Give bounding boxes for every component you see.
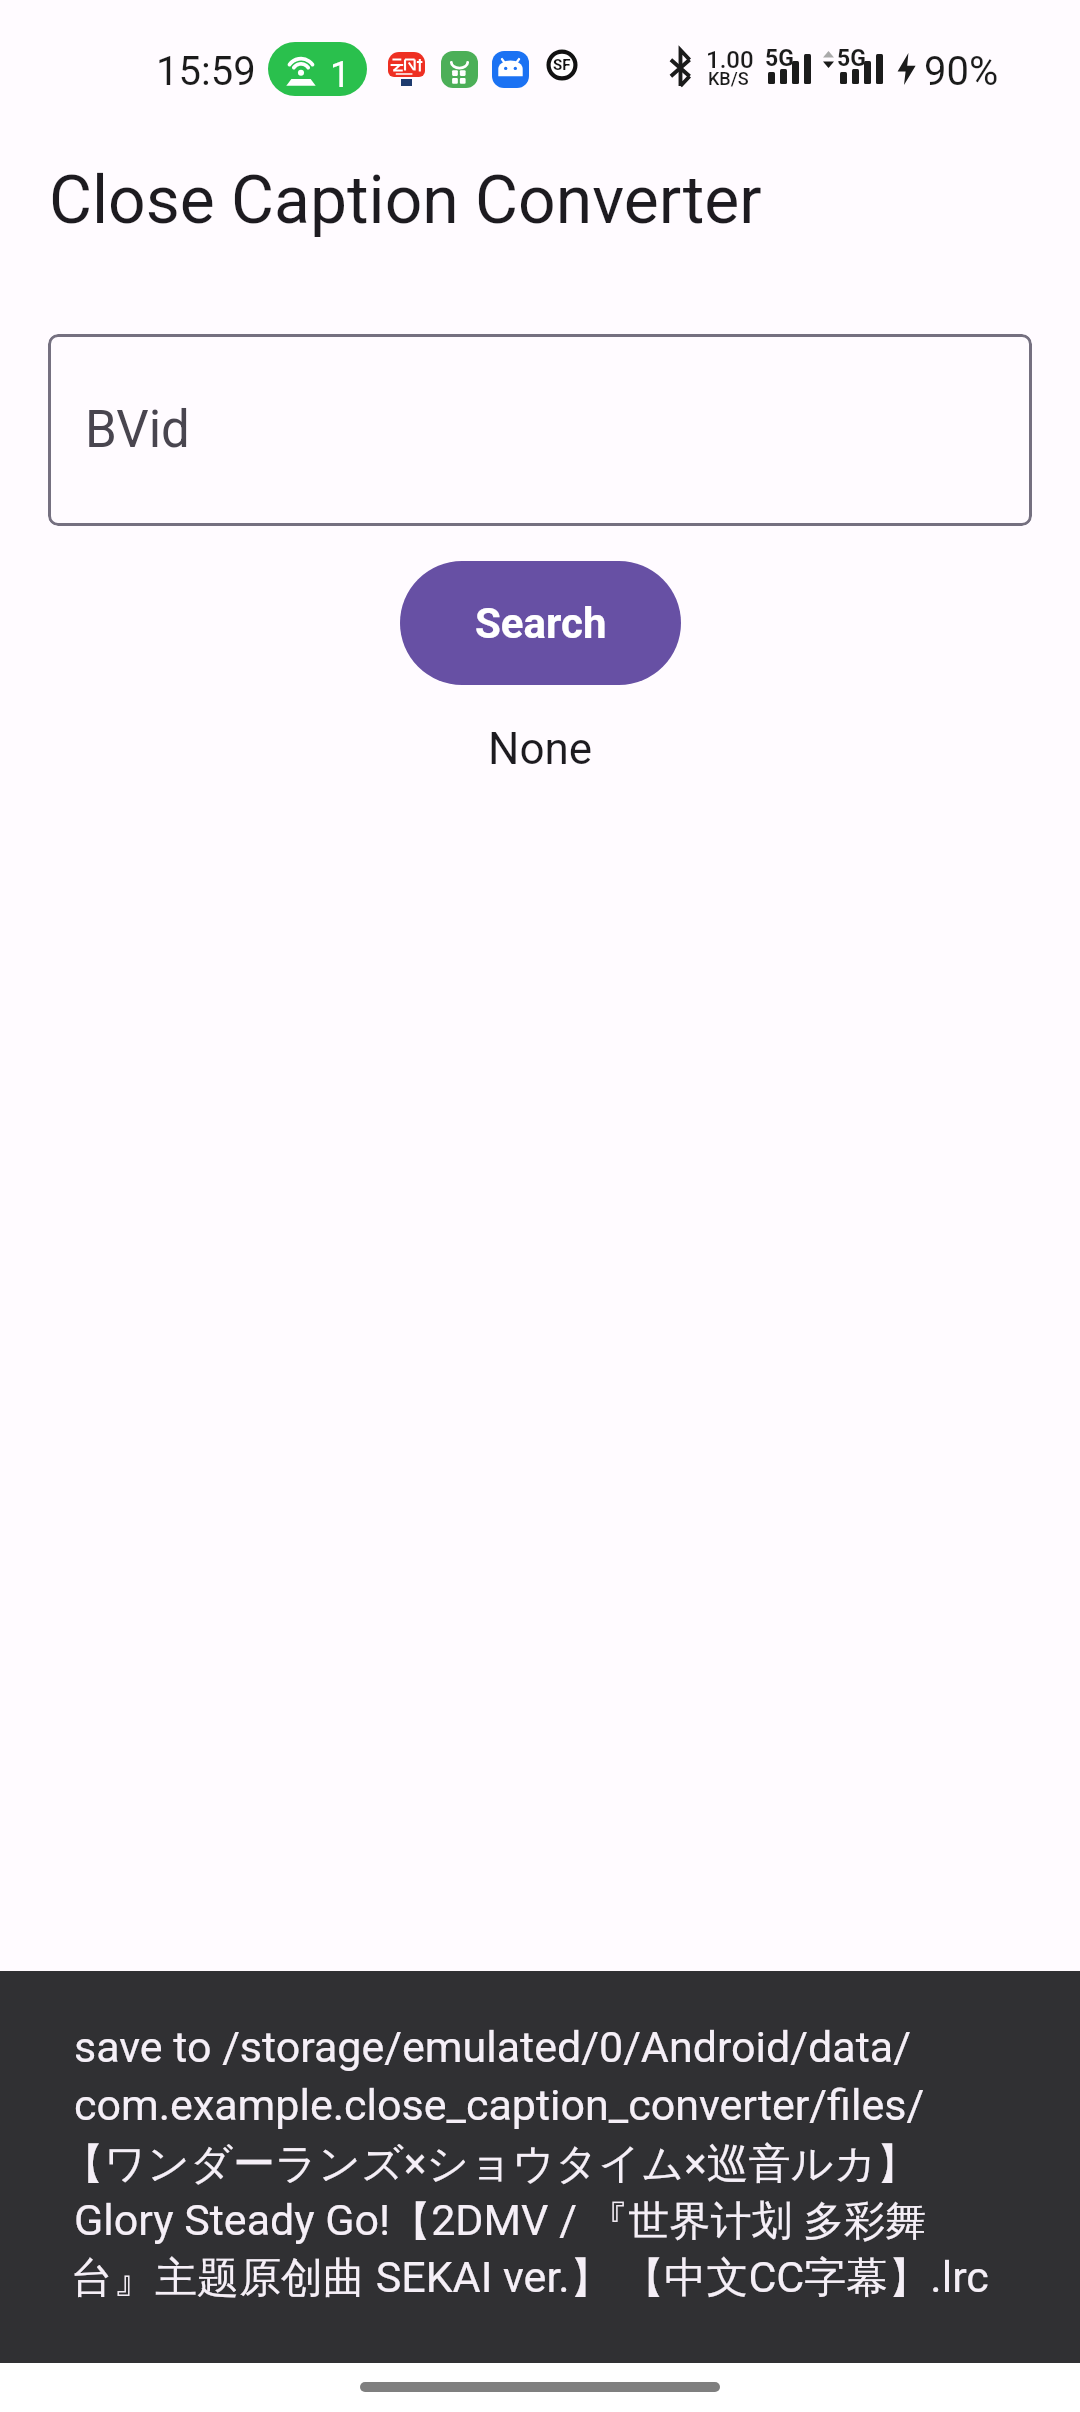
staticText: BVid (85, 400, 190, 460)
staticText: 90% (924, 48, 999, 95)
staticText: 15:59 (156, 48, 256, 95)
button[interactable]: Search (400, 561, 681, 685)
staticText: KB/S (708, 68, 749, 89)
staticText: Close Caption Converter (49, 162, 762, 239)
button[interactable]: Pinduoduo notification (441, 51, 478, 88)
staticText: 5G (765, 45, 794, 72)
button[interactable]: Android system notification (492, 51, 529, 88)
staticText: Glory Steady Go!【2DMV / 『世界计划 多彩舞 (74, 2195, 927, 2247)
staticText: SF (553, 56, 571, 74)
staticText: 5G (837, 45, 866, 72)
staticText: None (488, 723, 593, 775)
staticText: 【ワンダーランズ×ショウタイム×巡音ルカ】 (62, 2138, 919, 2191)
staticText: 1 (330, 54, 351, 96)
staticText: 台』主题原创曲 SEKAI ver.】 【中文CC字幕】.lrc (71, 2252, 989, 2305)
button[interactable]: BVid input field (48, 334, 1032, 526)
staticText: com.example.close_caption_converter/file… (74, 2080, 925, 2130)
staticText: 1.00 (706, 46, 754, 74)
button[interactable]: Hotspot, 1 device connected (268, 42, 367, 96)
button[interactable]: SF Express notification (546, 49, 578, 81)
staticText: save to /storage/emulated/0/Android/data… (74, 2022, 911, 2072)
staticText: Search (475, 599, 607, 648)
button[interactable]: UnionPay notification (388, 52, 425, 86)
button[interactable]: save to /storage/emulated/0/Android/data… (0, 1971, 1080, 2363)
